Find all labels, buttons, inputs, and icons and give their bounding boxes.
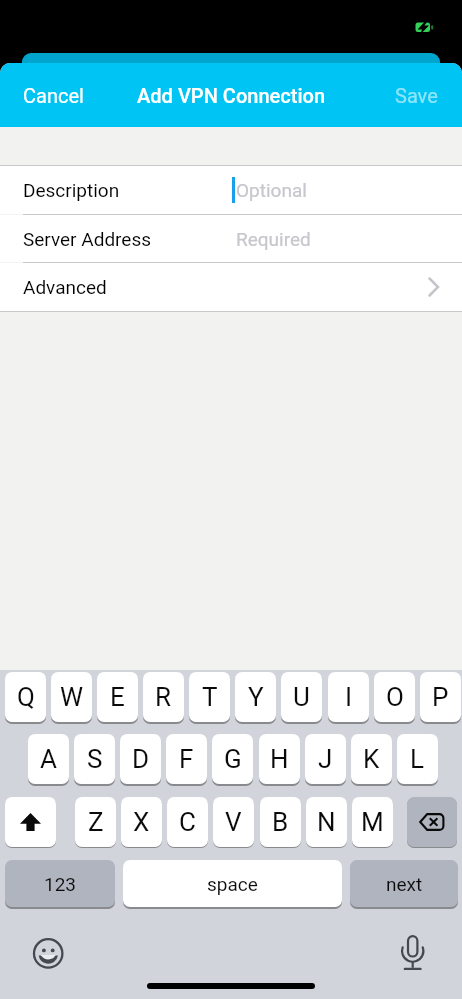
staticText: Required (236, 228, 311, 250)
button[interactable]: G (212, 734, 253, 784)
staticText: J (318, 744, 333, 774)
staticText: V (225, 807, 242, 837)
button[interactable]: C (167, 797, 208, 847)
button[interactable]: J (305, 734, 346, 784)
staticText: F (179, 744, 194, 774)
button[interactable]: Server Address (0, 215, 462, 262)
staticText: Advanced (23, 276, 107, 298)
button[interactable]: Description (0, 166, 462, 214)
staticText: P (432, 682, 449, 712)
staticText: Save (395, 84, 438, 107)
staticText: Add VPN Connection (137, 84, 326, 107)
staticText: next (386, 873, 423, 895)
staticText: Z (88, 807, 104, 837)
button[interactable]: H (259, 734, 300, 784)
button[interactable]: Q (5, 672, 46, 722)
button[interactable]: I (328, 672, 369, 722)
button[interactable]: R (143, 672, 184, 722)
button[interactable]: P (420, 672, 461, 722)
staticText: O (386, 682, 404, 712)
button[interactable]: Z (75, 797, 116, 847)
staticText: H (270, 744, 289, 774)
staticText: A (40, 744, 57, 774)
button[interactable]: S (74, 734, 115, 784)
button[interactable]: next (350, 860, 458, 907)
staticText: B (272, 807, 289, 837)
button[interactable]: W (51, 672, 92, 722)
staticText: E (110, 682, 125, 712)
staticText: Server Address (23, 228, 152, 250)
button[interactable] (20, 922, 76, 978)
staticText: T (202, 682, 218, 712)
staticText: Optional (236, 179, 307, 201)
staticText: M (361, 807, 384, 837)
staticText: U (293, 682, 310, 712)
staticText: X (133, 807, 150, 837)
staticText: K (363, 744, 380, 774)
button[interactable]: Save (395, 84, 462, 107)
button[interactable]: F (166, 734, 207, 784)
button[interactable]: A (28, 734, 69, 784)
staticText: R (155, 682, 172, 712)
button[interactable]: Advanced (0, 263, 462, 311)
button[interactable]: 123 (5, 860, 115, 907)
staticText: N (317, 807, 336, 837)
button[interactable]: Cancel (0, 84, 84, 107)
button[interactable] (388, 925, 440, 979)
button[interactable]: T (189, 672, 230, 722)
staticText: L (410, 744, 425, 774)
button[interactable]: B (260, 797, 301, 847)
staticText: Y (248, 682, 264, 712)
staticText: G (224, 744, 242, 774)
button[interactable] (407, 797, 457, 847)
staticText: 123 (44, 873, 77, 895)
staticText: Cancel (23, 84, 84, 107)
staticText: Description (23, 179, 120, 201)
button[interactable]: space (123, 860, 342, 907)
staticText: C (179, 807, 196, 837)
staticText: Q (17, 682, 35, 712)
button[interactable]: X (121, 797, 162, 847)
button[interactable]: E (97, 672, 138, 722)
staticText: I (345, 682, 353, 712)
button[interactable]: U (281, 672, 322, 722)
staticText: D (132, 744, 150, 774)
button[interactable] (5, 797, 56, 847)
staticText: space (207, 873, 258, 895)
button[interactable]: D (120, 734, 161, 784)
staticText: S (87, 744, 103, 774)
button[interactable]: Y (235, 672, 276, 722)
staticText: W (60, 682, 84, 712)
button[interactable]: M (352, 797, 393, 847)
button[interactable]: L (397, 734, 438, 784)
button[interactable]: N (306, 797, 347, 847)
button[interactable]: O (374, 672, 415, 722)
button[interactable]: K (351, 734, 392, 784)
button[interactable]: V (213, 797, 254, 847)
